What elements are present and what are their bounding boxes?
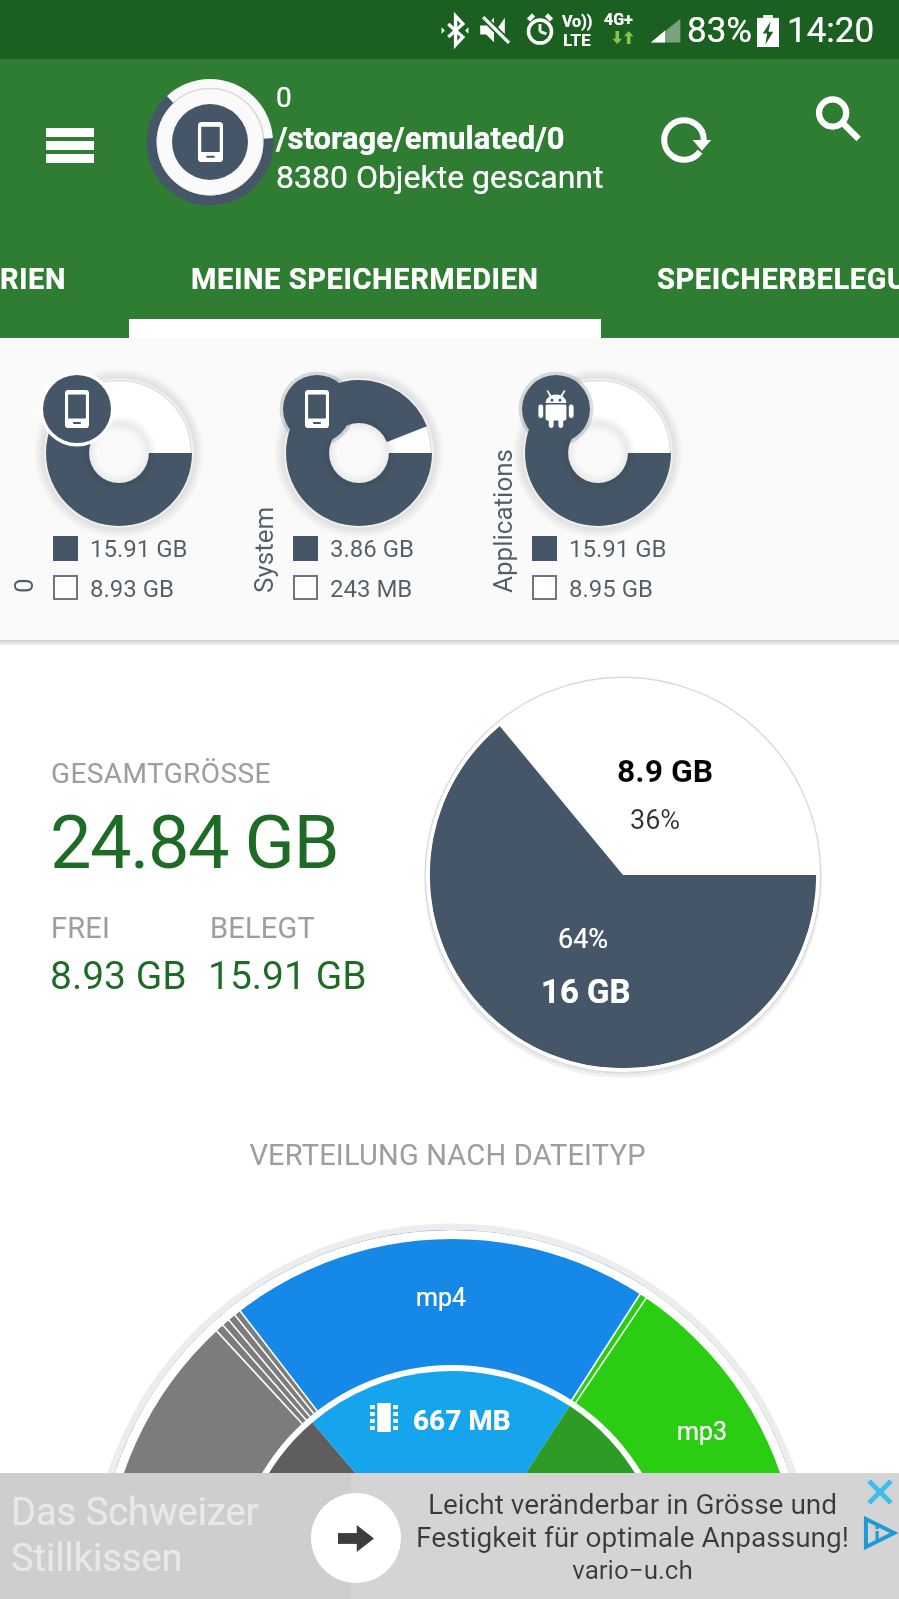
button[interactable]: KATEGORIEN <box>0 220 67 338</box>
staticText: 16 GB <box>541 972 631 1011</box>
staticText: KATEGORIEN <box>0 262 67 296</box>
staticText: 14:20 <box>787 10 875 51</box>
staticText: 64% <box>558 923 609 955</box>
staticText: 8380 Objekte gescannt <box>276 158 604 196</box>
staticText: System <box>249 333 279 593</box>
staticText: 4G+ <box>604 10 633 29</box>
button[interactable]: Search <box>783 72 887 176</box>
staticText: 8.95 GB <box>569 575 654 603</box>
staticText: mp4 <box>416 1283 467 1312</box>
staticText: 15.91 GB <box>90 535 188 563</box>
button[interactable]: Menu <box>26 101 114 189</box>
staticText: 0 <box>9 333 39 593</box>
staticText: VERTEILUNG NACH DATEITYP <box>0 1138 897 1172</box>
staticText: 36% <box>630 804 681 836</box>
staticText: FREI <box>51 911 111 945</box>
staticText: 243 MB <box>330 575 413 603</box>
staticText: SPEICHERBELEGUNG <box>657 262 899 296</box>
button[interactable]: Ad choices <box>864 1517 896 1549</box>
staticText: 0 <box>276 81 292 114</box>
staticText: Applications <box>488 333 518 593</box>
staticText: MEINE SPEICHERMEDIEN <box>191 262 539 296</box>
button[interactable]: SPEICHERBELEGUNG <box>601 220 899 338</box>
staticText: LTE <box>563 30 591 50</box>
staticText: 8.93 GB <box>90 575 175 603</box>
staticText: Das Schweizer <box>11 1490 259 1535</box>
staticText: Leicht veränderbar in Grösse und <box>405 1488 860 1521</box>
staticText: 8.93 GB <box>50 953 187 999</box>
staticText: 3.86 GB <box>330 535 415 563</box>
button[interactable]: Open advertisement <box>311 1493 401 1583</box>
staticText: 15.91 GB <box>569 535 667 563</box>
staticText: BELEGT <box>210 911 315 945</box>
button[interactable]: Close advertisement <box>866 1478 894 1506</box>
staticText: 8.9 GB <box>617 752 714 790</box>
staticText: GESAMTGRÖSSE <box>51 757 271 790</box>
staticText: /storage/emulated/0 <box>276 120 565 156</box>
staticText: 83% <box>687 10 752 51</box>
button[interactable]: Refresh <box>639 85 743 189</box>
staticText: 15.91 GB <box>208 953 367 999</box>
staticText: mp3 <box>677 1417 728 1446</box>
staticText: Festigkeit für optimale Anpassung! <box>405 1521 860 1554</box>
staticText: 24.84 GB <box>50 799 338 886</box>
button[interactable]: MEINE SPEICHERMEDIEN <box>129 220 601 338</box>
staticText: 667 MB <box>413 1404 511 1437</box>
staticText: Vo)) <box>562 12 593 31</box>
staticText: vario−u.ch <box>405 1555 860 1585</box>
staticText: Stillkissen <box>11 1536 183 1581</box>
